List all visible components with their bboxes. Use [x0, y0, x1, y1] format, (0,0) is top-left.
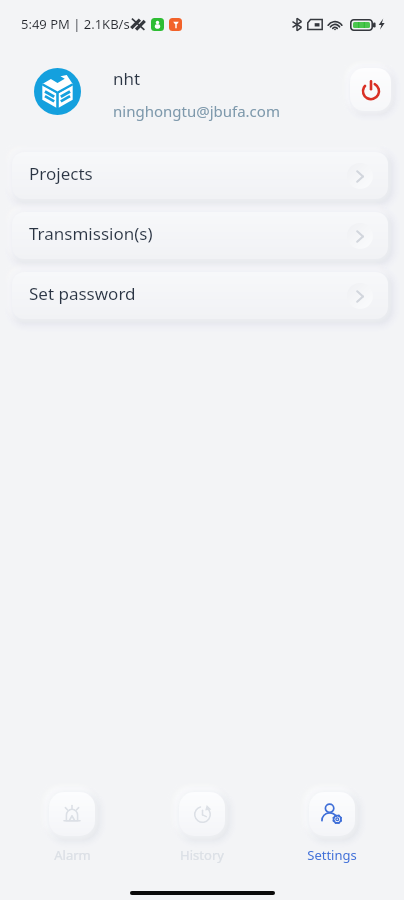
staticText: History	[180, 846, 224, 864]
staticText: Projects	[29, 162, 93, 185]
staticText: ninghongtu@jbufa.com	[113, 101, 280, 121]
button[interactable]: Log out	[350, 68, 391, 111]
staticText: Transmission(s)	[29, 222, 153, 245]
button[interactable]: History	[162, 792, 242, 864]
staticText: Set password	[29, 282, 136, 305]
button[interactable]: Settings	[292, 792, 372, 864]
staticText: Alarm	[54, 846, 91, 864]
button[interactable]: Alarm	[32, 792, 112, 864]
button[interactable]: Set password	[12, 272, 388, 319]
staticText: nht	[113, 67, 141, 90]
button[interactable]: Projects	[12, 152, 388, 199]
staticText: 5:49 PM | 2.1KB/s	[21, 15, 130, 33]
staticText: Settings	[307, 846, 357, 864]
button[interactable]: Transmission(s)	[12, 212, 388, 259]
